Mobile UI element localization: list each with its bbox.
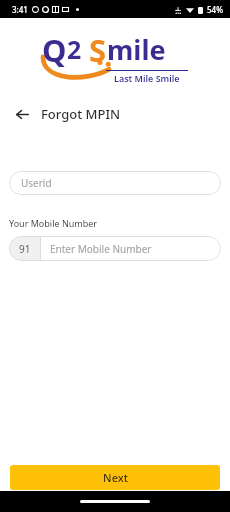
staticText: 54% bbox=[207, 4, 223, 15]
button[interactable]: 91 bbox=[9, 236, 221, 261]
staticText: 2 bbox=[67, 32, 82, 66]
staticText: Enter Mobile Number bbox=[50, 242, 152, 256]
staticText: 91 bbox=[19, 242, 31, 256]
staticText: Your Mobile Number bbox=[9, 217, 98, 229]
staticText: mile bbox=[107, 31, 166, 68]
staticText: 3:41 bbox=[12, 4, 28, 15]
button[interactable]: Back bbox=[11, 103, 33, 125]
staticText: Forgot MPIN bbox=[41, 105, 121, 123]
staticText: Q bbox=[42, 29, 67, 71]
staticText: Last Mile Smile bbox=[114, 72, 180, 84]
staticText: Next bbox=[103, 470, 128, 485]
button[interactable]: Userid bbox=[9, 171, 221, 195]
staticText: S bbox=[89, 29, 107, 71]
staticText: Userid bbox=[21, 176, 52, 190]
button[interactable]: Next bbox=[10, 465, 220, 490]
